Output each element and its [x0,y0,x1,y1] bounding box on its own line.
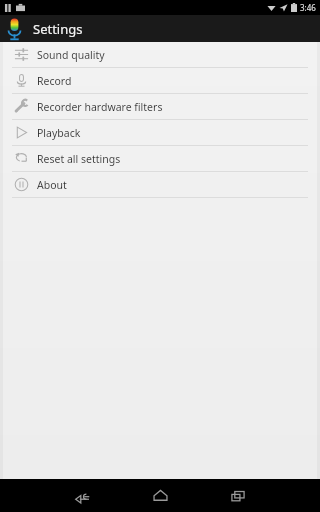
button[interactable]: Playback [0,120,320,146]
staticText: Reset all settings [37,152,121,166]
staticText: Playback [37,126,81,140]
staticText: Sound quality [37,48,105,62]
staticText: 3:46 [300,2,316,13]
staticText: Recorder hardware filters [37,100,163,114]
button[interactable]: Reset all settings [0,146,320,172]
button[interactable]: Record [0,68,320,94]
staticText: Record [37,74,72,88]
button[interactable]: Sound quality [0,42,320,68]
button[interactable]: Home [121,479,199,512]
staticText: Settings [33,20,83,38]
button[interactable]: About [0,172,320,198]
button[interactable]: Recorder hardware filters [0,94,320,120]
button[interactable]: Recents [199,479,277,512]
staticText: About [37,178,67,192]
button[interactable]: Back [43,479,121,512]
